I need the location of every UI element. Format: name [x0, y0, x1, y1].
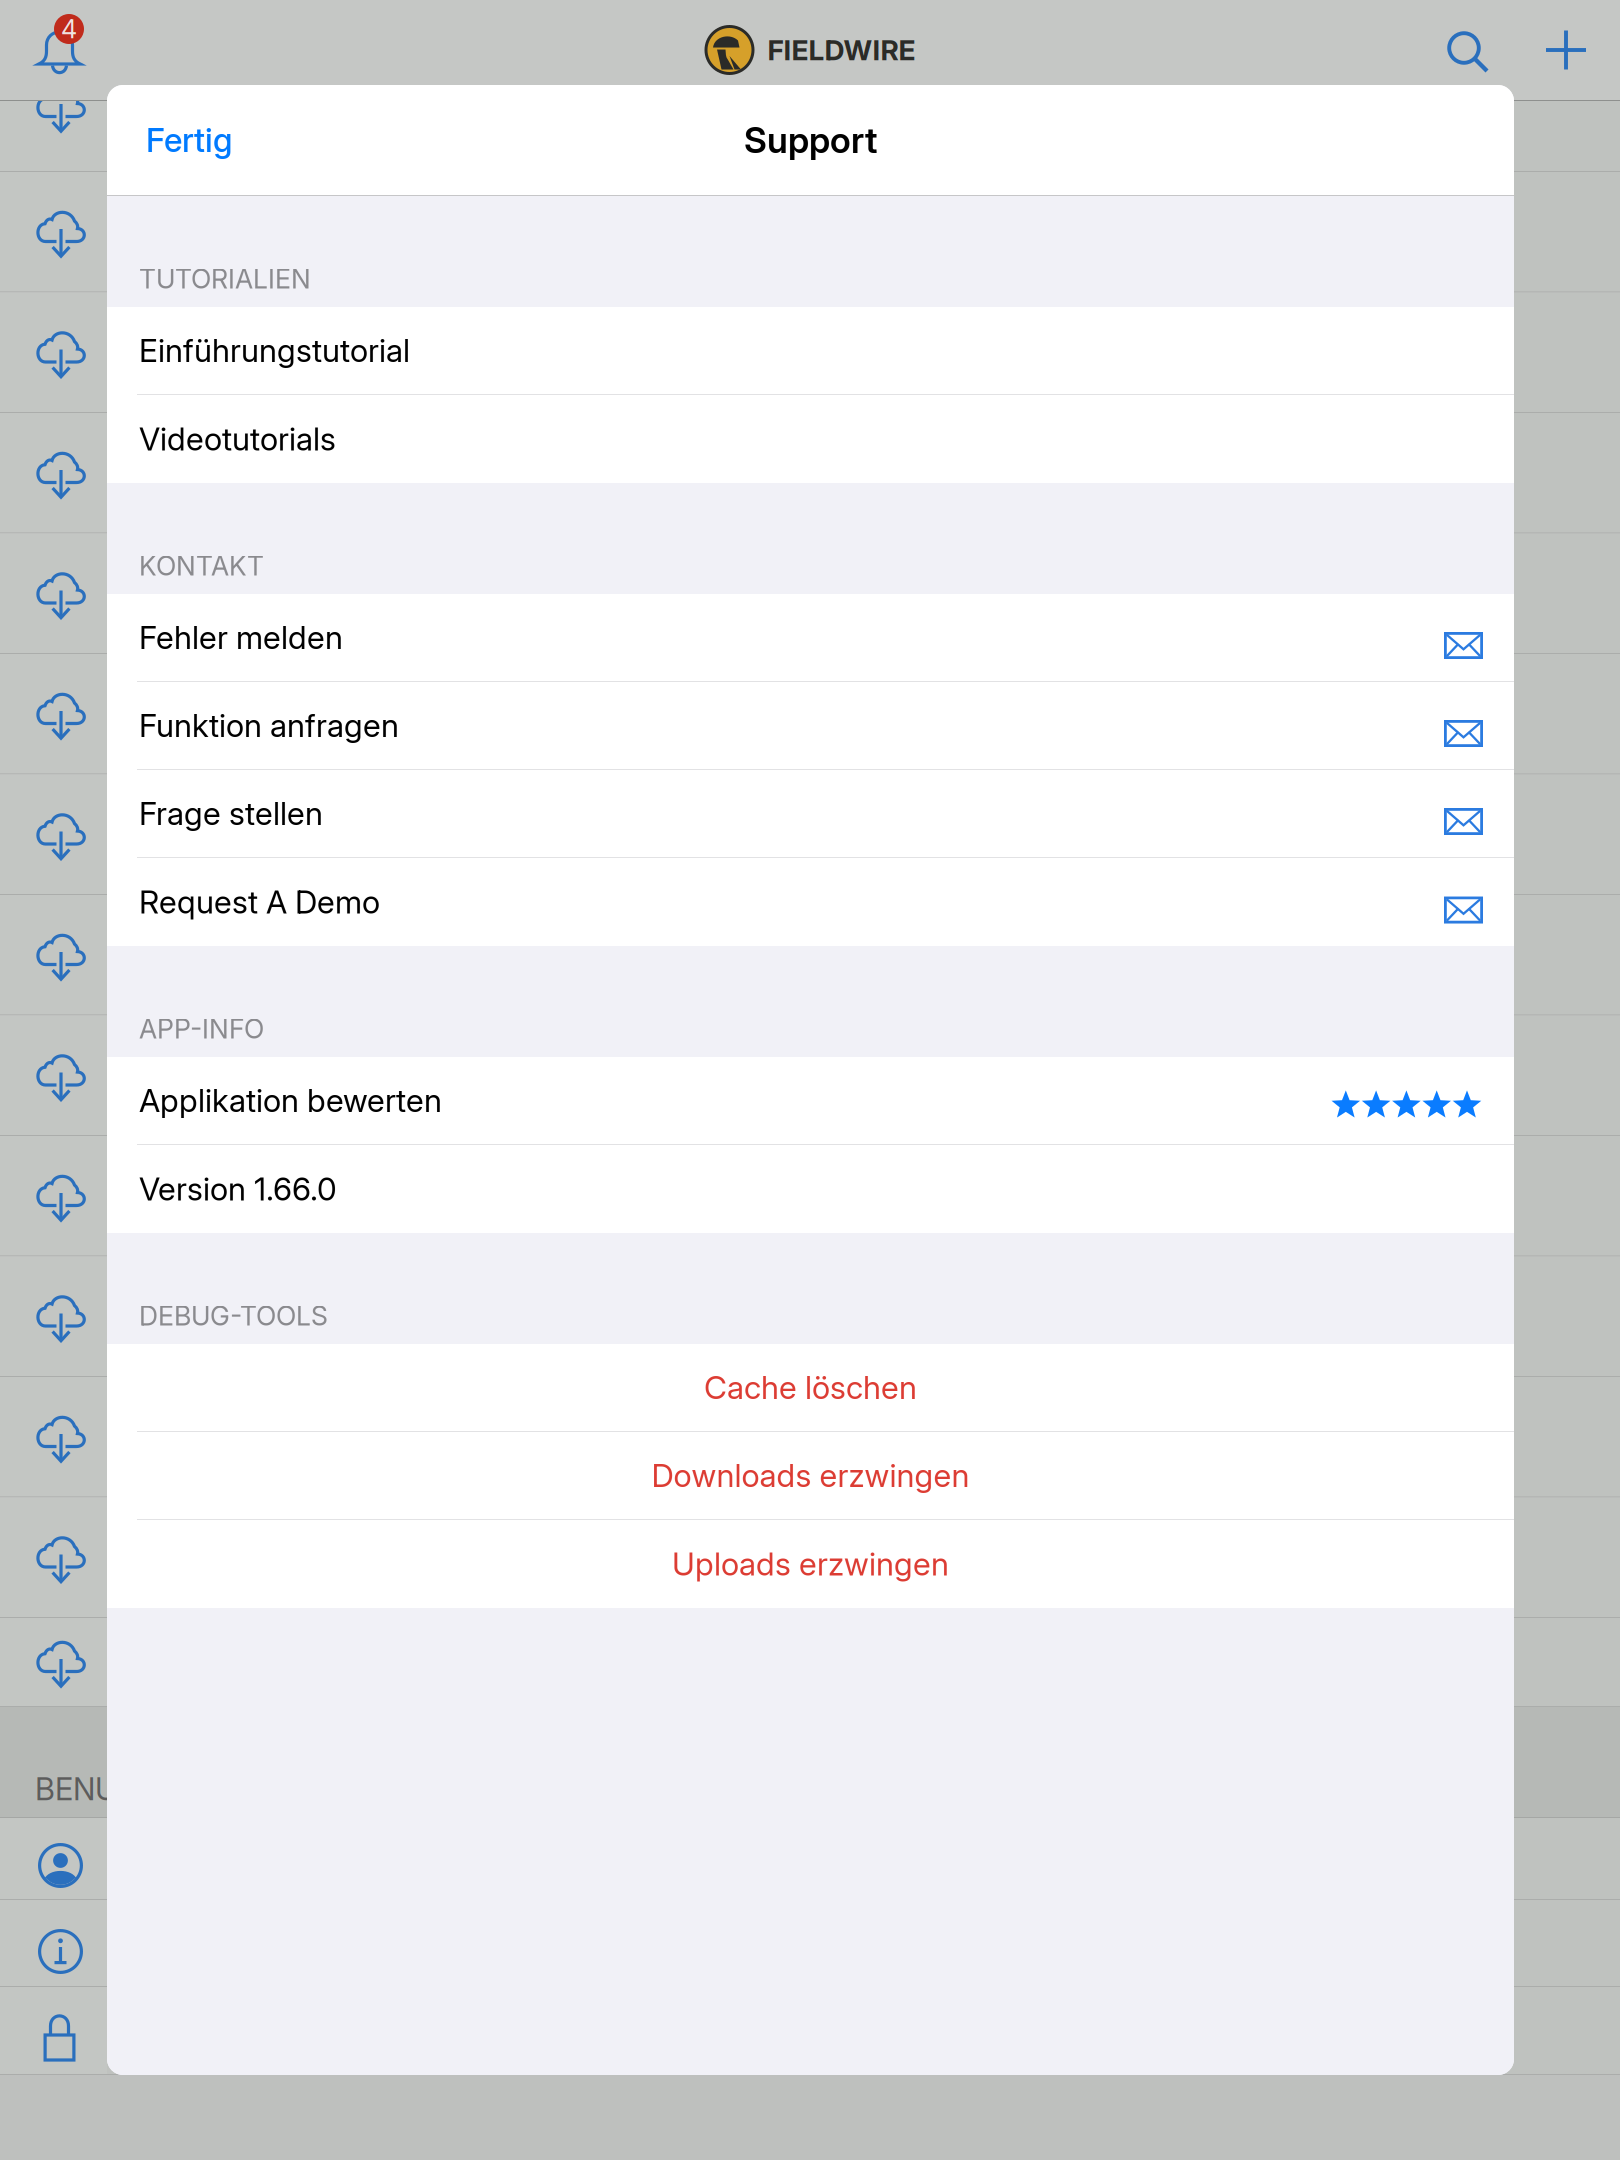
button[interactable]: Applikation bewerten	[107, 1057, 1514, 1145]
staticText: Fehler melden	[139, 618, 343, 657]
staticText: 4	[61, 14, 77, 44]
staticText: Videotutorials	[139, 420, 336, 458]
button[interactable]: Version 1.66.0	[107, 1145, 1514, 1233]
staticText: Cache löschen	[704, 1368, 917, 1407]
staticText: Uploads erzwingen	[672, 1545, 949, 1583]
staticText: TUTORIALIEN	[139, 263, 311, 295]
button[interactable]: Frage stellen	[107, 770, 1514, 858]
button[interactable]: Cache löschen	[107, 1344, 1514, 1432]
button[interactable]: Uploads erzwingen	[107, 1520, 1514, 1608]
staticText: Frage stellen	[139, 794, 323, 833]
staticText: Support	[744, 118, 877, 161]
staticText: Applikation bewerten	[139, 1081, 442, 1120]
button[interactable]: Request A Demo	[107, 858, 1514, 946]
staticText: Einführungstutorial	[139, 331, 410, 370]
staticText: Funktion anfragen	[139, 706, 399, 745]
staticText: Fertig	[146, 120, 232, 160]
button[interactable]: Fertig	[107, 85, 232, 195]
button[interactable]: Notifications	[0, 0, 107, 100]
button[interactable]: Add	[1521, 0, 1611, 100]
staticText: APP-INFO	[139, 1013, 264, 1045]
button[interactable]: Einführungstutorial	[107, 307, 1514, 395]
button[interactable]: Search	[1423, 0, 1513, 100]
button[interactable]: Downloads erzwingen	[107, 1432, 1514, 1520]
button[interactable]: Funktion anfragen	[107, 682, 1514, 770]
staticText: Request A Demo	[139, 883, 380, 921]
staticText: DEBUG-TOOLS	[139, 1300, 328, 1332]
button[interactable]: Videotutorials	[107, 395, 1514, 483]
staticText: KONTAKT	[139, 550, 264, 582]
staticText: BENUT	[35, 1770, 136, 1807]
staticText: Downloads erzwingen	[651, 1456, 969, 1495]
staticText: FIELDWIRE	[767, 33, 915, 67]
staticText: Version 1.66.0	[139, 1170, 337, 1208]
button[interactable]: Fehler melden	[107, 594, 1514, 682]
